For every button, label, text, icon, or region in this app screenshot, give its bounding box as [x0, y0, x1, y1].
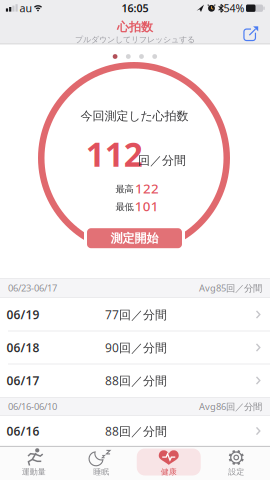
staticText: 101 [135, 197, 159, 215]
staticText: au [19, 1, 32, 15]
staticText: 06/18 [6, 339, 39, 355]
staticText: 最高 [115, 183, 133, 195]
button[interactable]: 06/17 [0, 364, 270, 397]
staticText: 06/17 [6, 372, 39, 388]
button[interactable]: 運動量 [1, 446, 67, 477]
staticText: 77回／分間 [105, 306, 167, 322]
staticText: 最低 [115, 201, 133, 213]
staticText: 112 [86, 132, 143, 176]
button[interactable]: 設定 [203, 446, 269, 477]
button[interactable]: 健康 [136, 446, 202, 477]
staticText: 88回／分間 [105, 372, 167, 388]
button[interactable]: 06/19 [0, 298, 270, 331]
staticText: 122 [135, 179, 159, 197]
button[interactable]: 06/16 [0, 416, 270, 446]
staticText: 健康 [161, 467, 177, 477]
staticText: 回／分間 [138, 153, 186, 168]
staticText: 06/19 [6, 306, 39, 322]
staticText: 今回測定した心拍数 [80, 109, 188, 123]
staticText: 90回／分間 [105, 339, 167, 355]
staticText: 16:05 [121, 1, 148, 15]
staticText: プルダウンしてリフレッシュする [75, 35, 195, 44]
button[interactable]: Share [241, 23, 261, 43]
staticText: 06/23-06/17 [8, 282, 57, 294]
staticText: 設定 [228, 467, 244, 477]
button[interactable]: 睡眠 [68, 446, 134, 477]
staticText: Avg85回／分間 [199, 282, 262, 294]
button[interactable]: 06/18 [0, 331, 270, 364]
staticText: 睡眠 [93, 467, 109, 477]
staticText: 心拍数 [117, 19, 153, 34]
staticText: 測定開始 [110, 231, 158, 245]
staticText: 06/16-06/10 [8, 400, 57, 413]
button[interactable]: 測定開始 [87, 228, 182, 248]
staticText: 54% [223, 1, 244, 15]
staticText: 運動量 [22, 467, 46, 477]
staticText: 06/16 [6, 423, 39, 439]
staticText: 88回／分間 [105, 423, 167, 439]
staticText: Avg86回／分間 [199, 400, 262, 413]
